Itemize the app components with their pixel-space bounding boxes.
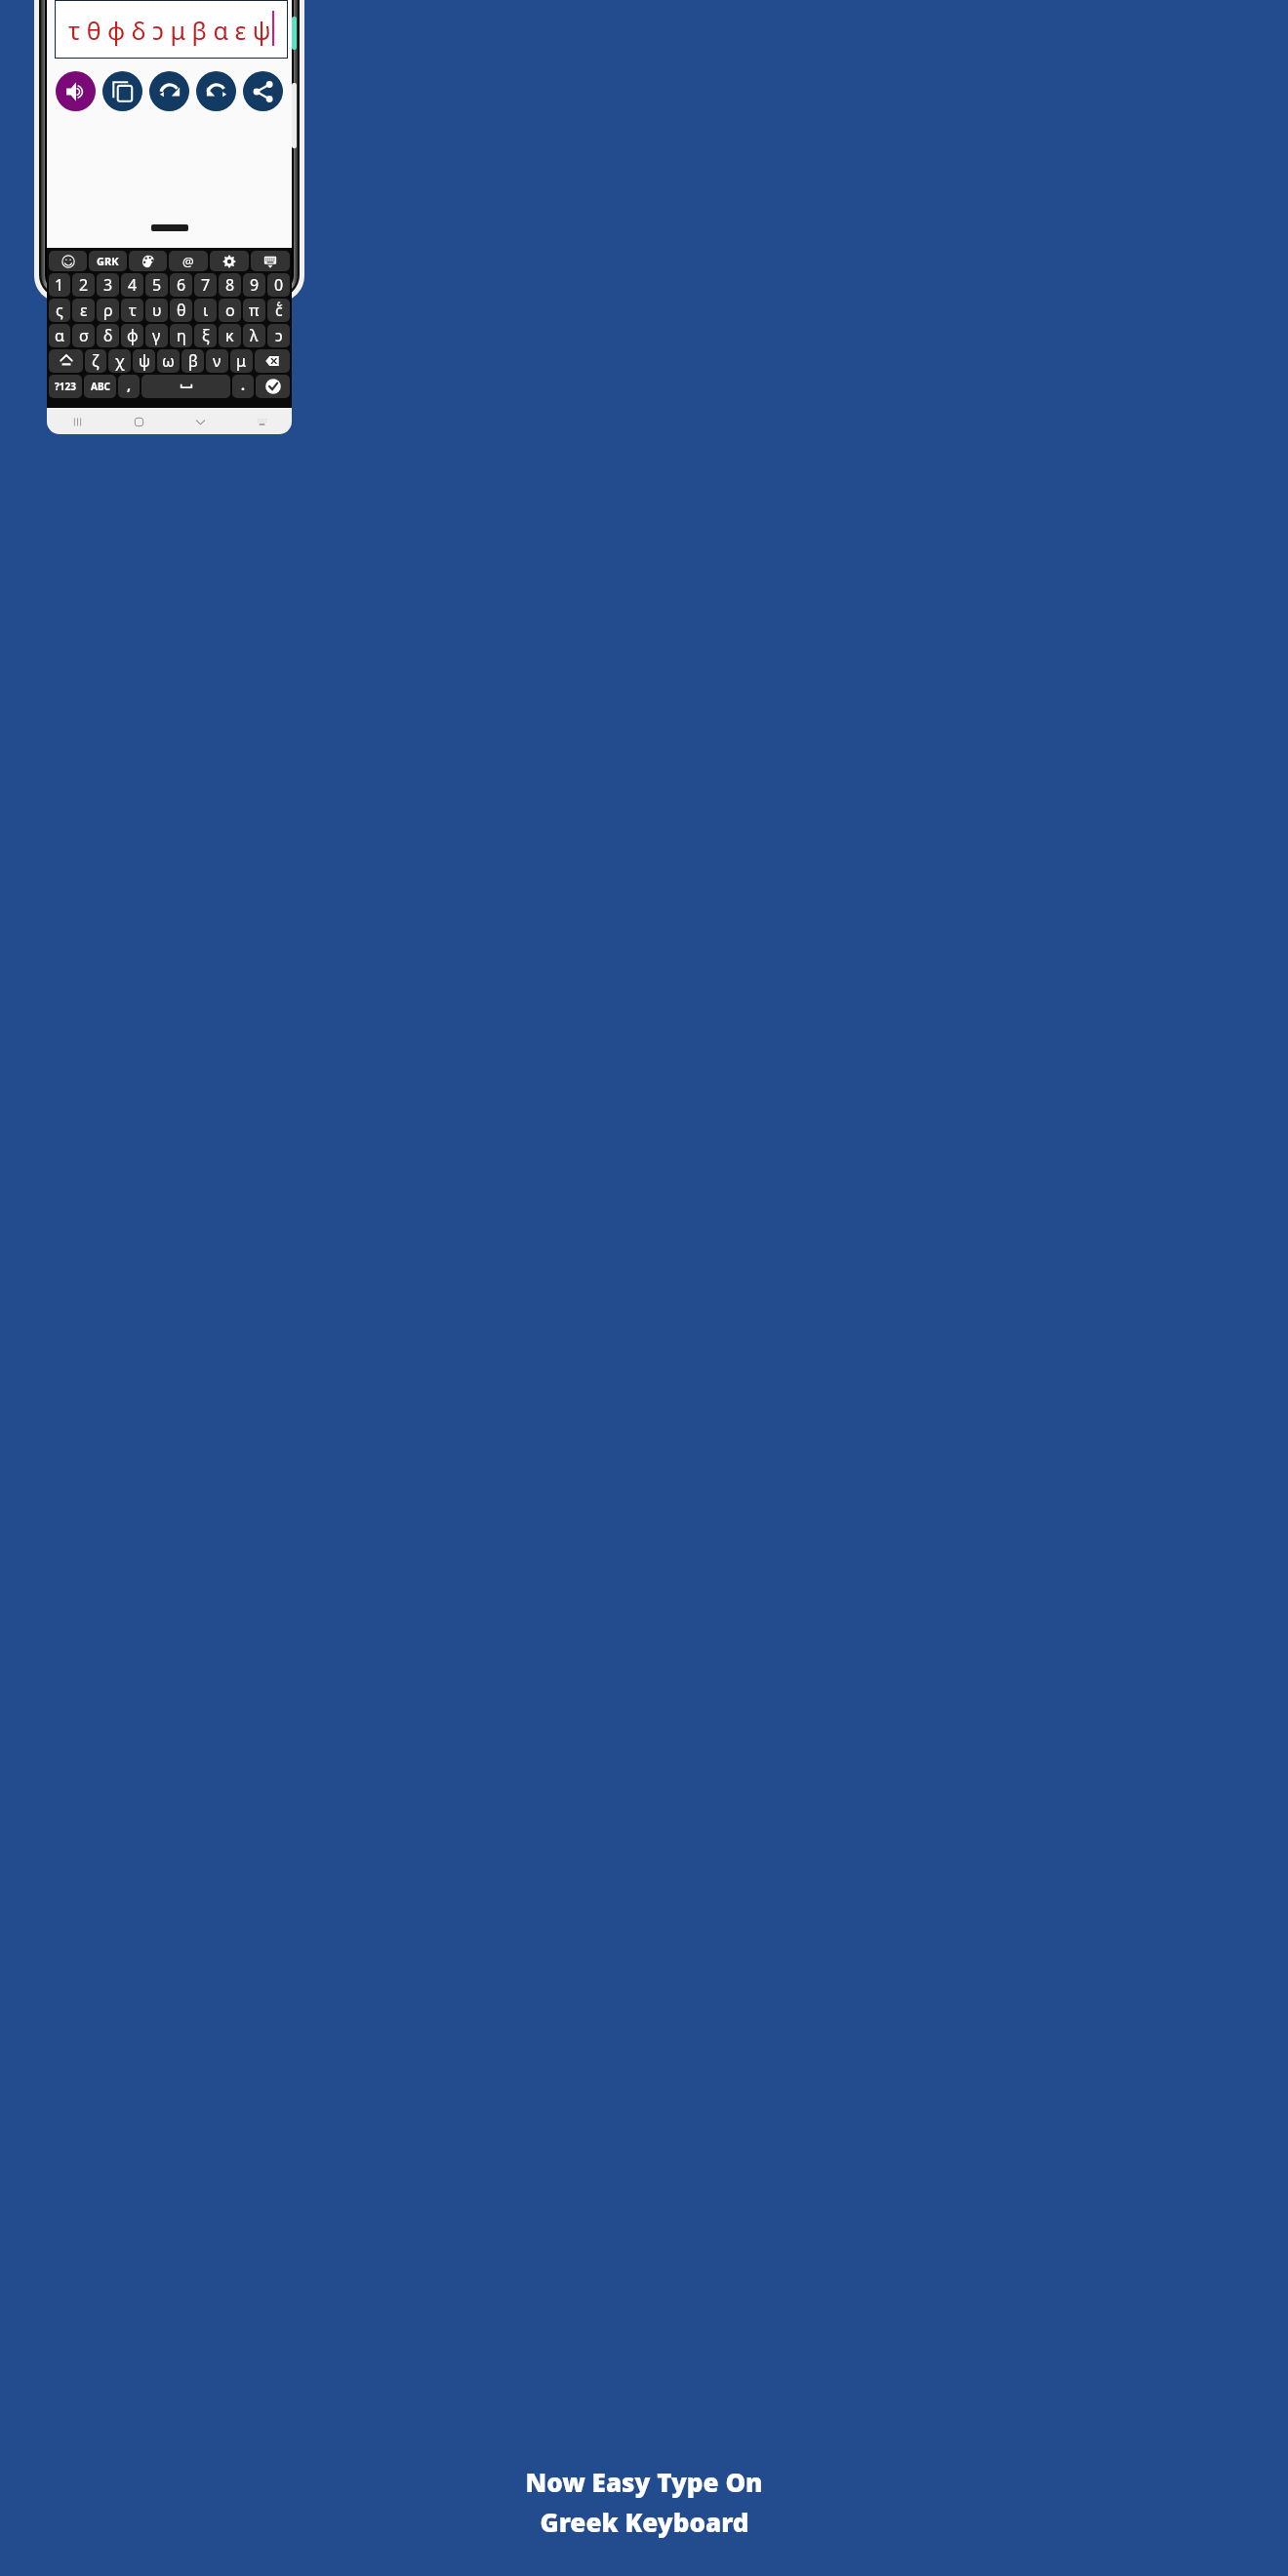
button[interactable]: β: [181, 349, 204, 373]
staticText: ,: [127, 376, 131, 394]
button[interactable]: .: [232, 375, 254, 398]
staticText: .: [241, 376, 245, 394]
staticText: ψ: [139, 350, 150, 372]
staticText: χ: [115, 350, 125, 372]
button[interactable]: key: [49, 251, 87, 271]
staticText: ABC: [91, 380, 110, 393]
button[interactable]: ,: [118, 375, 140, 398]
button[interactable]: κ: [219, 324, 241, 347]
staticText: κ: [225, 325, 234, 346]
button[interactable]: Recents: [64, 409, 90, 434]
staticText: τ: [129, 300, 137, 321]
button[interactable]: č: [267, 299, 290, 322]
button[interactable]: τ: [121, 299, 143, 322]
staticText: δ: [103, 325, 113, 346]
button[interactable]: ?123: [49, 375, 82, 398]
staticText: θ: [177, 300, 186, 321]
button[interactable]: ο: [219, 299, 241, 322]
button[interactable]: 2: [72, 273, 95, 297]
button[interactable]: Undo: [196, 71, 236, 111]
button[interactable]: δ: [97, 324, 119, 347]
button[interactable]: γ: [145, 324, 168, 347]
staticText: π: [249, 300, 260, 321]
staticText: ξ: [202, 325, 210, 346]
staticText: ζ: [92, 350, 100, 372]
staticText: 7: [201, 274, 211, 296]
button[interactable]: Speak: [56, 71, 96, 111]
staticText: ɔ: [275, 325, 283, 346]
staticText: č: [277, 300, 281, 309]
staticText: σ: [79, 325, 89, 346]
button[interactable]: υ: [145, 299, 168, 322]
button[interactable]: 7: [194, 273, 217, 297]
button[interactable]: Hide keyboard: [187, 409, 213, 434]
staticText: ρ: [103, 300, 113, 321]
button[interactable]: ι: [194, 299, 217, 322]
button[interactable]: Switch keyboard: [249, 409, 274, 434]
button[interactable]: σ: [72, 324, 95, 347]
staticText: ι: [203, 300, 209, 321]
staticText: 0: [274, 274, 284, 296]
button[interactable]: 6: [170, 273, 192, 297]
staticText: 9: [250, 274, 260, 296]
button[interactable]: Copy: [102, 71, 142, 111]
button[interactable]: Home: [126, 409, 151, 434]
button[interactable]: Share: [243, 71, 283, 111]
button[interactable]: π: [243, 299, 265, 322]
button[interactable]: 9: [243, 273, 265, 297]
button[interactable]: key: [141, 375, 230, 398]
button[interactable]: ω: [157, 349, 180, 373]
button[interactable]: 0: [267, 273, 290, 297]
staticText: λ: [250, 325, 259, 346]
button[interactable]: λ: [243, 324, 265, 347]
staticText: 4: [128, 274, 138, 296]
staticText: Greek Keyboard: [540, 2505, 749, 2539]
button[interactable]: key: [49, 349, 83, 373]
staticText: η: [177, 325, 186, 346]
staticText: υ: [152, 300, 162, 321]
button[interactable]: 3: [97, 273, 119, 297]
button[interactable]: 8: [219, 273, 241, 297]
button[interactable]: key: [129, 251, 167, 271]
staticText: α: [55, 325, 64, 346]
staticText: 3: [103, 274, 113, 296]
button[interactable]: χ: [108, 349, 131, 373]
button[interactable]: ρ: [97, 299, 119, 322]
button[interactable]: ν: [206, 349, 228, 373]
button[interactable]: key: [255, 349, 290, 373]
staticText: 6: [177, 274, 186, 296]
button[interactable]: τ θ φ δ ɔ μ β α ε ψ: [55, 0, 288, 59]
button[interactable]: α: [49, 324, 70, 347]
button[interactable]: 1: [49, 273, 70, 297]
staticText: ν: [213, 350, 221, 372]
button[interactable]: μ: [230, 349, 253, 373]
staticText: Now Easy Type On: [525, 2465, 763, 2499]
button[interactable]: ψ: [133, 349, 155, 373]
button[interactable]: φ: [121, 324, 143, 347]
button[interactable]: ɔ: [267, 324, 290, 347]
staticText: φ: [127, 325, 139, 346]
button[interactable]: key: [210, 251, 249, 271]
staticText: ο: [225, 300, 235, 321]
button[interactable]: 4: [121, 273, 143, 297]
button[interactable]: ε: [72, 299, 95, 322]
staticText: γ: [152, 325, 161, 346]
staticText: @: [182, 253, 194, 270]
button[interactable]: Redo: [149, 71, 189, 111]
button[interactable]: ζ: [85, 349, 106, 373]
button[interactable]: key: [256, 375, 290, 398]
button[interactable]: ς: [49, 299, 70, 322]
button[interactable]: ξ: [194, 324, 217, 347]
staticText: 1: [55, 274, 64, 296]
button[interactable]: GRK: [89, 251, 127, 271]
staticText: 5: [152, 274, 162, 296]
button[interactable]: 5: [145, 273, 168, 297]
staticText: ε: [80, 300, 88, 321]
button[interactable]: @: [169, 251, 208, 271]
button[interactable]: ABC: [84, 375, 116, 398]
button[interactable]: η: [170, 324, 192, 347]
button[interactable]: key: [251, 251, 290, 271]
staticText: GRK: [97, 254, 119, 268]
staticText: 2: [79, 274, 89, 296]
button[interactable]: θ: [170, 299, 192, 322]
